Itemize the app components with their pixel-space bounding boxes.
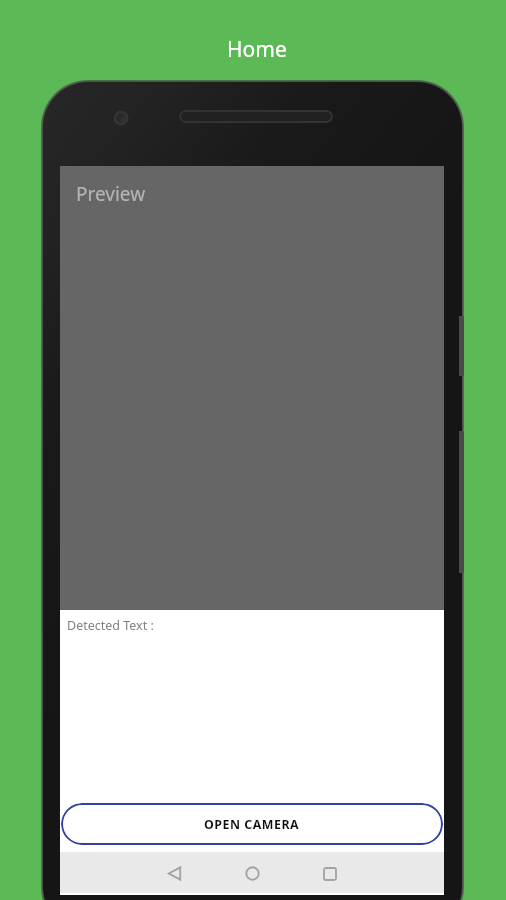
staticText: Home xyxy=(227,35,287,64)
button[interactable]: Home xyxy=(226,852,278,893)
button[interactable]: OPEN CAMERA xyxy=(61,803,443,845)
button[interactable]: Recent apps xyxy=(304,852,356,893)
staticText: Preview xyxy=(76,181,146,207)
button[interactable]: Back xyxy=(148,852,200,893)
staticText: Detected Text : xyxy=(67,617,154,634)
staticText: OPEN CAMERA xyxy=(204,816,300,833)
